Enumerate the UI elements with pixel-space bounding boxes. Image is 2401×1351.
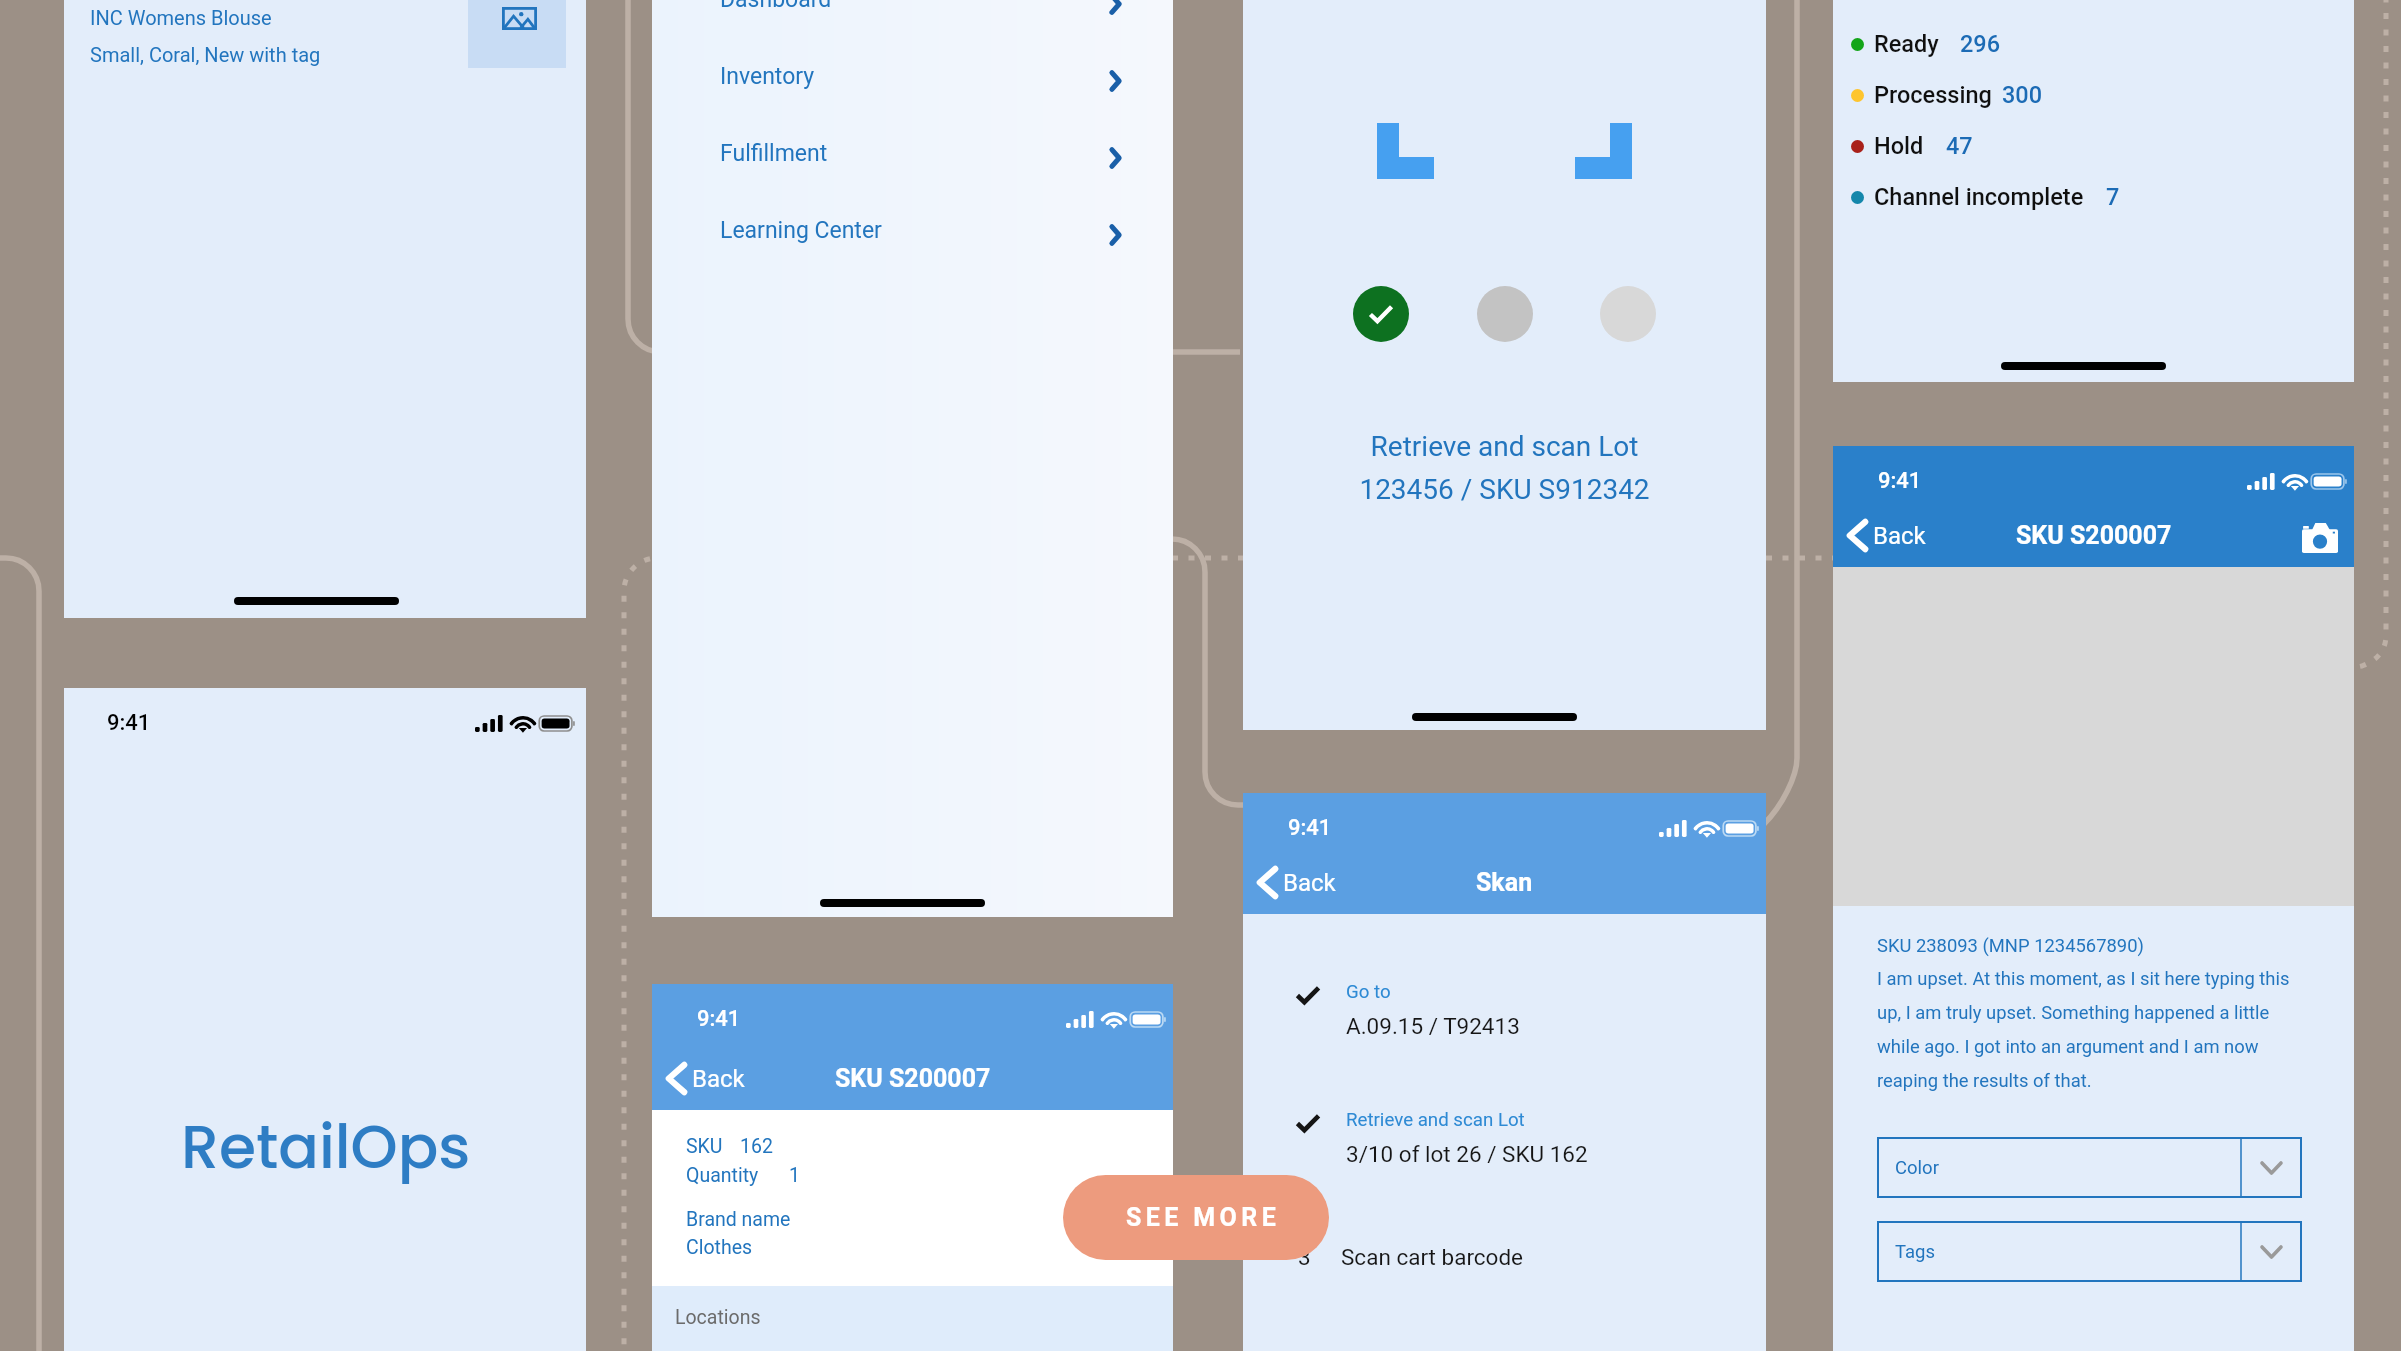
staticText: Quantity: [686, 1164, 759, 1187]
staticText: 7: [2106, 183, 2120, 211]
button[interactable]: Step 1 done: [1353, 286, 1409, 342]
button[interactable]: Color: [1877, 1137, 2302, 1198]
staticText: Back: [1283, 869, 1336, 897]
staticText: 3: [1298, 1244, 1311, 1270]
staticText: 162: [740, 1135, 773, 1158]
button[interactable]: Add photo: [468, 0, 566, 68]
staticText: 9:41: [697, 1006, 741, 1032]
staticText: Brand name: [686, 1208, 791, 1231]
button[interactable]: Fulfillment: [720, 138, 1128, 168]
staticText: Dashboard: [720, 0, 1102, 13]
staticText: Tags: [1895, 1241, 1936, 1263]
button[interactable]: Camera: [2302, 523, 2338, 553]
staticText: RetailOps: [181, 1105, 471, 1189]
staticText: Fulfillment: [720, 140, 1102, 167]
staticText: INC Womens Blouse: [90, 6, 272, 29]
button[interactable]: Retrieve and scan Lot: [1296, 1109, 1766, 1167]
button[interactable]: Back: [661, 1063, 745, 1094]
button[interactable]: Go to: [1296, 981, 1766, 1039]
staticText: Retrieve and scan Lot: [1346, 1109, 1525, 1131]
staticText: SKU S200007: [2016, 521, 2172, 550]
button[interactable]: Learning Center: [720, 215, 1128, 245]
staticText: A.09.15 / T92413: [1346, 1013, 1520, 1039]
staticText: Ready: [1874, 30, 1939, 58]
button[interactable]: Tags: [1877, 1221, 2302, 1282]
staticText: Clothes: [686, 1236, 753, 1259]
staticText: Retrieve and scan Lot: [1243, 430, 1766, 463]
staticText: SKU 238093 (MNP 1234567890): [1877, 935, 2144, 957]
staticText: Back: [1873, 522, 1926, 550]
button[interactable]: Dashboard: [720, 0, 1128, 14]
staticText: Learning Center: [720, 217, 1102, 244]
staticText: Hold: [1874, 132, 1924, 160]
staticText: Small, Coral, New with tag: [90, 43, 321, 66]
button[interactable]: Back: [1252, 867, 1336, 898]
button[interactable]: Inventory: [720, 61, 1128, 91]
staticText: 300: [2002, 81, 2043, 109]
staticText: Processing: [1874, 81, 1992, 109]
staticText: 1: [789, 1164, 800, 1187]
button[interactable]: SEE MORE: [1063, 1175, 1329, 1260]
staticText: Locations: [675, 1306, 761, 1329]
staticText: SKU S200007: [835, 1064, 991, 1093]
staticText: Inventory: [720, 63, 1102, 90]
staticText: I am upset. At this moment, as I sit her…: [1877, 968, 2302, 1091]
button[interactable]: Back: [1842, 520, 1926, 551]
button[interactable]: Hold: [1851, 132, 1973, 160]
button[interactable]: Ready: [1851, 30, 2001, 58]
button[interactable]: Step 3: [1600, 286, 1656, 342]
staticText: 296: [1960, 30, 2001, 58]
staticText: 3/10 of lot 26 / SKU 162: [1346, 1141, 1588, 1167]
button[interactable]: 3: [1298, 1244, 1766, 1270]
staticText: Scan cart barcode: [1341, 1244, 1524, 1270]
staticText: 9:41: [107, 710, 151, 736]
button[interactable]: Step 2: [1477, 286, 1533, 342]
staticText: Go to: [1346, 981, 1391, 1003]
staticText: Skan: [1476, 868, 1533, 897]
staticText: SKU: [686, 1135, 723, 1158]
staticText: 9:41: [1288, 815, 1332, 841]
staticText: 123456 / SKU S912342: [1243, 473, 1766, 506]
button[interactable]: Channel incomplete: [1851, 183, 2120, 211]
staticText: SEE MORE: [1126, 1203, 1281, 1232]
staticText: 47: [1946, 132, 1973, 160]
staticText: Channel incomplete: [1874, 183, 2084, 211]
button[interactable]: Processing: [1851, 81, 2043, 109]
staticText: 9:41: [1878, 468, 1922, 494]
staticText: Color: [1895, 1157, 1939, 1179]
staticText: Back: [692, 1065, 745, 1093]
